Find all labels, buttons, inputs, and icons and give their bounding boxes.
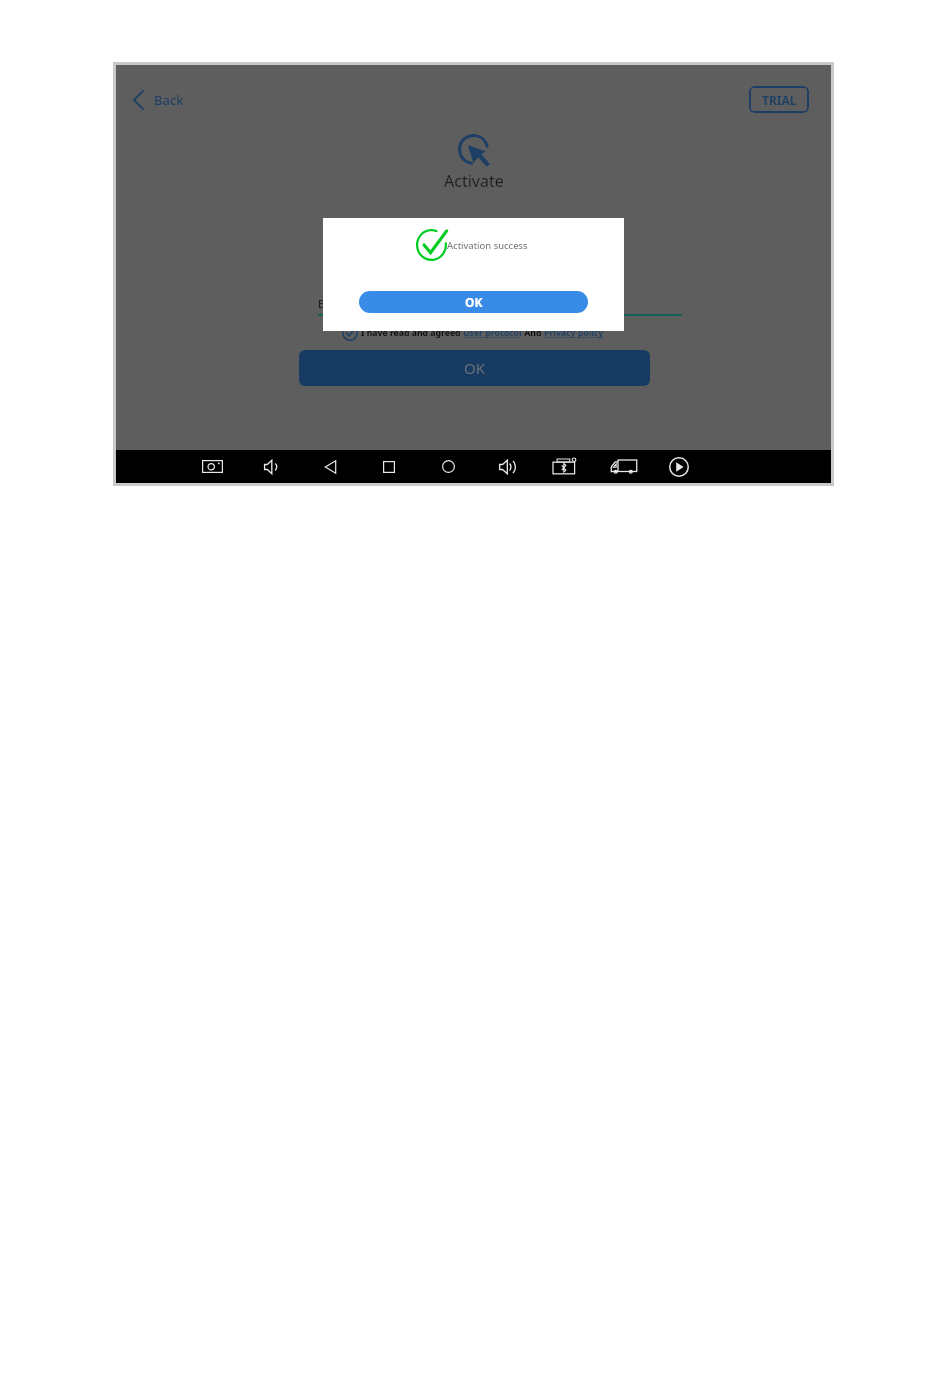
button[interactable]: Volume up (479, 450, 535, 483)
button[interactable]: Back (302, 450, 358, 483)
button[interactable]: Play (651, 450, 707, 483)
button[interactable]: Recents (420, 450, 476, 483)
staticText: And (522, 327, 542, 339)
staticText: OK (464, 358, 486, 378)
button[interactable]: Car (596, 450, 652, 483)
button[interactable]: Enter the activation code (318, 296, 682, 314)
staticText: Activate (444, 170, 504, 192)
staticText: I have read and agreed (361, 327, 461, 339)
staticText: Enter the activation code (318, 296, 447, 311)
button[interactable]: OK (359, 291, 588, 313)
button[interactable]: User protocol (463, 327, 522, 339)
button[interactable]: Bluetooth (537, 450, 593, 483)
button[interactable]: TRIAL (749, 86, 809, 113)
button[interactable]: Home (361, 450, 417, 483)
button[interactable]: Volume down (243, 450, 299, 483)
button[interactable]: Screenshot (184, 450, 240, 483)
staticText: TRIAL (762, 92, 797, 108)
button[interactable]: I have read and agreed (340, 323, 606, 343)
button[interactable]: OK (299, 350, 650, 386)
staticText: Back (154, 91, 184, 109)
button[interactable]: Privacy policy (544, 327, 604, 339)
button[interactable]: Back (129, 86, 188, 114)
staticText: Activation success (447, 239, 528, 252)
staticText: OK (465, 294, 483, 310)
